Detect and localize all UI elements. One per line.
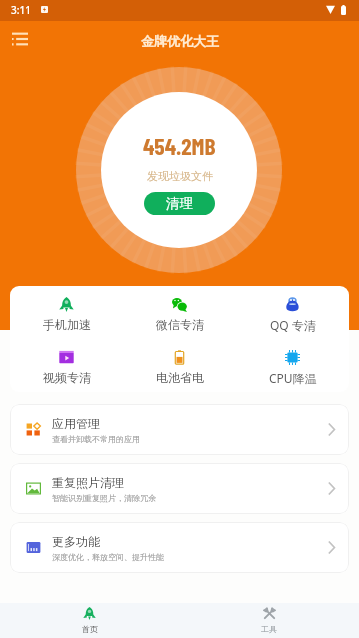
staticText: 首页 [82, 624, 98, 634]
button[interactable]: 清理 [144, 192, 215, 215]
staticText: 金牌优化大王 [141, 33, 219, 49]
staticText: 深度优化，释放空间、提升性能 [52, 552, 164, 562]
staticText: 智能识别重复照片，清除冗余 [52, 493, 156, 503]
staticText: 454.2MB [143, 131, 216, 159]
button[interactable]: 首页 [0, 603, 179, 638]
button[interactable]: 手机加速 [10, 286, 123, 339]
staticText: 发现垃圾文件 [147, 169, 213, 183]
staticText: 应用管理 [52, 416, 100, 431]
button[interactable]: 重复照片清理 [10, 463, 349, 514]
staticText: 查看并卸载不常用的应用 [52, 434, 140, 444]
button[interactable]: 视频专清 [10, 339, 123, 392]
button[interactable]: CPU降温 [236, 339, 349, 392]
staticText: 3:11 [11, 3, 31, 17]
staticText: 微信专清 [156, 317, 204, 332]
staticText: 电池省电 [156, 370, 204, 385]
button[interactable]: Menu [3, 22, 37, 56]
button[interactable]: 微信专清 [123, 286, 236, 339]
staticText: 视频专清 [43, 370, 91, 385]
staticText: CPU降温 [269, 370, 317, 386]
button[interactable]: 应用管理 [10, 404, 349, 455]
button[interactable]: QQ 专清 [236, 286, 349, 339]
staticText: QQ 专清 [270, 317, 316, 333]
staticText: 手机加速 [43, 317, 91, 332]
button[interactable]: 电池省电 [123, 339, 236, 392]
button[interactable]: 工具 [179, 603, 359, 638]
button[interactable]: 更多功能 [10, 522, 349, 573]
staticText: 工具 [261, 624, 277, 634]
staticText: 更多功能 [52, 534, 100, 549]
staticText: 清理 [166, 195, 193, 212]
staticText: 重复照片清理 [52, 475, 124, 490]
